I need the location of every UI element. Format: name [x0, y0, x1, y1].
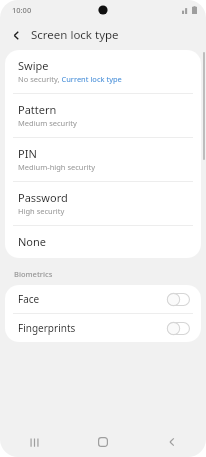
button[interactable]: Toggle — [167, 293, 190, 306]
button[interactable]: Navigate up — [5, 24, 27, 46]
button[interactable]: Fingerprints — [5, 314, 201, 342]
staticText: Pattern — [18, 102, 57, 117]
staticText: 10:00 — [12, 5, 32, 15]
staticText: Screen lock type — [31, 27, 119, 43]
button[interactable]: Password — [5, 182, 201, 225]
button[interactable]: Swipe — [5, 50, 201, 93]
staticText: Medium-high security — [18, 162, 96, 172]
staticText: Biometrics — [14, 269, 53, 279]
button[interactable]: Toggle — [167, 322, 190, 335]
staticText: Fingerprints — [18, 321, 167, 335]
staticText: Medium security — [18, 118, 77, 128]
button[interactable]: None — [5, 226, 201, 258]
button[interactable]: Home — [68, 427, 137, 457]
button[interactable]: Face — [5, 285, 201, 313]
button[interactable]: Back — [137, 427, 206, 457]
button[interactable]: PIN — [5, 138, 201, 181]
button[interactable]: Recent apps — [0, 427, 68, 457]
button[interactable]: Pattern — [5, 94, 201, 137]
staticText: No security, Current lock type — [18, 74, 122, 84]
staticText: Swipe — [18, 58, 49, 73]
staticText: None — [18, 234, 47, 249]
staticText: Password — [18, 190, 68, 205]
staticText: Face — [18, 292, 167, 306]
staticText: High security — [18, 206, 65, 216]
staticText: PIN — [18, 146, 37, 161]
